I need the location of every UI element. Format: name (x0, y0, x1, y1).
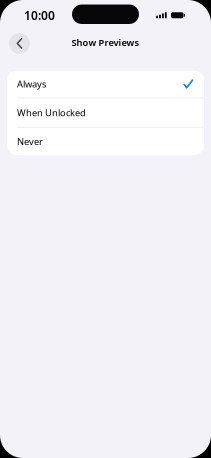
staticText: When Unlocked (17, 106, 86, 119)
button[interactable]: Always (7, 70, 204, 97)
staticText: 10:00 (24, 7, 55, 23)
button[interactable]: Back (9, 33, 30, 54)
staticText: Always (17, 78, 46, 90)
button[interactable]: Never (7, 128, 204, 155)
staticText: Show Previews (71, 36, 139, 49)
staticText: Never (17, 135, 43, 148)
button[interactable]: When Unlocked (7, 98, 204, 127)
